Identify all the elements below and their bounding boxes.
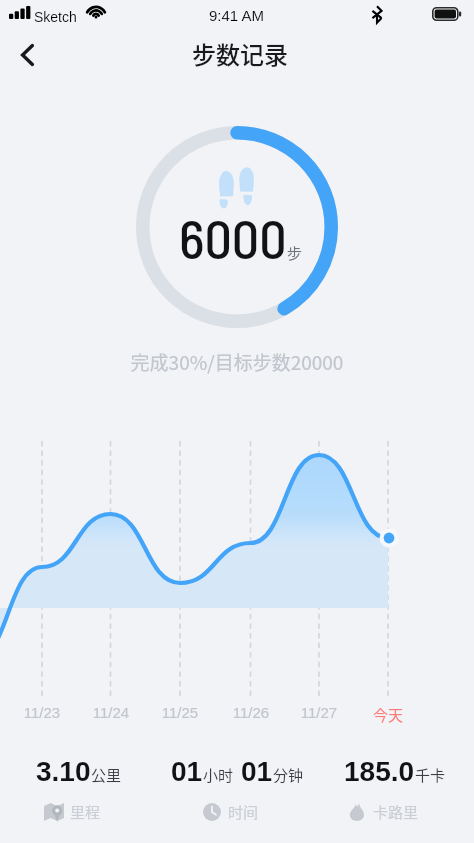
button[interactable]: 3.10: [0, 752, 158, 827]
staticText: 里程: [70, 801, 101, 823]
staticText: 3.10: [36, 756, 91, 787]
button[interactable]: 01: [158, 752, 316, 827]
staticText: 11/23: [12, 704, 72, 721]
staticText: 01: [171, 756, 203, 787]
staticText: 01: [241, 756, 273, 787]
staticText: 时间: [228, 801, 259, 823]
staticText: 步: [287, 242, 303, 264]
button[interactable]: Back: [5, 33, 49, 77]
staticText: 6000: [179, 205, 287, 270]
staticText: 分钟: [273, 764, 304, 786]
staticText: 9:41 AM: [209, 7, 265, 24]
staticText: 小时: [203, 764, 234, 786]
staticText: 11/24: [81, 704, 141, 721]
staticText: 11/26: [221, 704, 281, 721]
staticText: 11/25: [150, 704, 210, 721]
staticText: 步数记录: [192, 36, 288, 71]
staticText: 公里: [91, 764, 122, 786]
staticText: 千卡: [415, 764, 446, 786]
staticText: 完成30%/目标步数20000: [0, 348, 474, 376]
staticText: 11/27: [289, 704, 349, 721]
staticText: Sketch: [34, 9, 77, 25]
staticText: 185.0: [344, 756, 415, 787]
staticText: 卡路里: [373, 801, 419, 823]
button[interactable]: 185.0: [316, 752, 474, 827]
staticText: 今天: [358, 704, 418, 726]
